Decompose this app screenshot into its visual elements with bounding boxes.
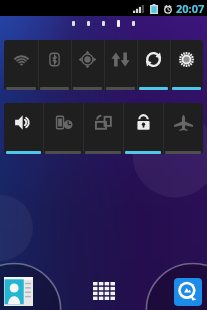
button[interactable]: Mobile data xyxy=(104,40,137,90)
button[interactable]: Page 3 xyxy=(102,21,105,26)
button[interactable]: People xyxy=(4,277,33,306)
button[interactable]: Bluetooth xyxy=(38,40,71,90)
button[interactable]: Page 2 xyxy=(87,21,90,26)
button[interactable]: Volume xyxy=(4,103,43,154)
button[interactable]: Page 5 xyxy=(132,21,135,26)
button[interactable]: Gallery xyxy=(174,278,202,306)
button[interactable]: Airplane mode xyxy=(163,103,203,154)
staticText: 20:07 xyxy=(176,1,205,16)
button[interactable]: Screen timeout xyxy=(43,103,83,154)
button[interactable]: Sync xyxy=(137,40,170,90)
button[interactable]: Location xyxy=(71,40,104,90)
button[interactable]: Page 1 xyxy=(72,21,75,26)
button[interactable]: All apps xyxy=(93,282,115,300)
button[interactable]: Brightness xyxy=(170,40,203,90)
button[interactable]: Auto rotate xyxy=(83,103,123,154)
button[interactable]: Page 4 xyxy=(117,20,120,27)
button[interactable]: Wi-Fi xyxy=(4,40,38,90)
button[interactable]: Lock screen xyxy=(123,103,163,154)
